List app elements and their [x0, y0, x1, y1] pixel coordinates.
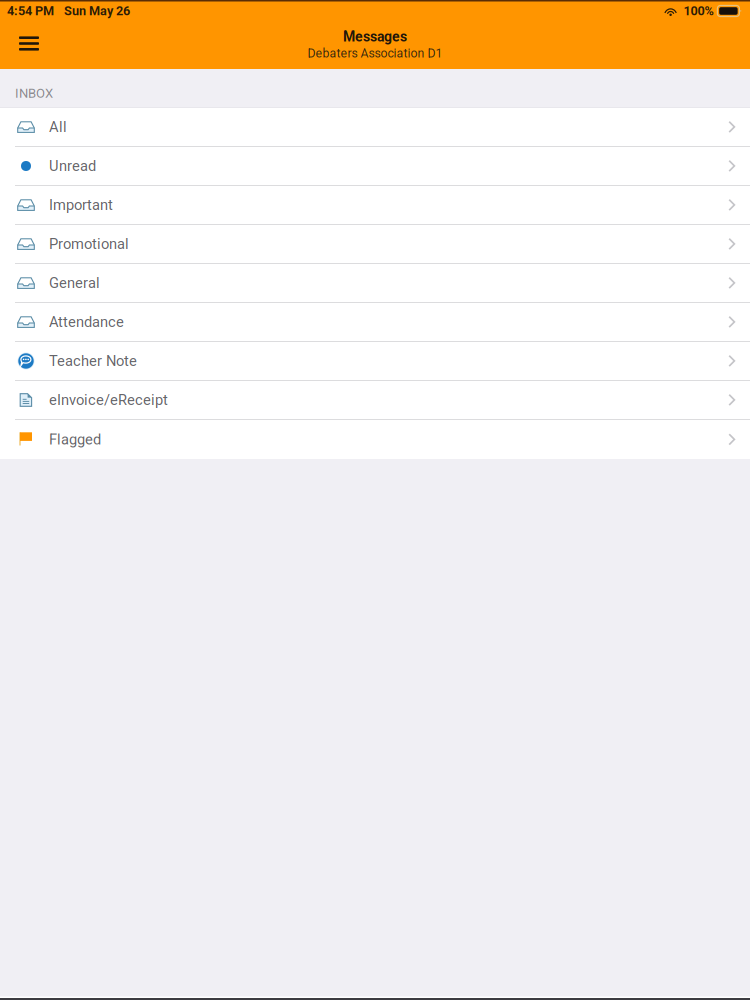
button[interactable]: Flagged: [0, 420, 750, 459]
staticText: Flagged: [49, 431, 101, 448]
staticText: Messages: [343, 29, 407, 45]
button[interactable]: Important: [0, 186, 750, 225]
button[interactable]: eInvoice/eReceipt: [0, 381, 750, 420]
staticText: Important: [49, 196, 113, 214]
staticText: Debaters Association D1: [307, 46, 442, 60]
staticText: All: [49, 118, 67, 136]
staticText: Sun May 26: [64, 4, 130, 18]
staticText: Promotional: [49, 235, 129, 253]
button[interactable]: Menu: [9, 22, 49, 69]
button[interactable]: Teacher Note: [0, 342, 750, 381]
staticText: INBOX: [15, 86, 53, 101]
staticText: Attendance: [49, 313, 124, 331]
button[interactable]: Unread: [0, 147, 750, 186]
button[interactable]: Promotional: [0, 225, 750, 264]
staticText: Teacher Note: [49, 352, 137, 370]
staticText: 100%: [683, 4, 713, 18]
staticText: General: [49, 274, 100, 292]
staticText: eInvoice/eReceipt: [49, 391, 168, 409]
button[interactable]: Attendance: [0, 303, 750, 342]
button[interactable]: All: [0, 108, 750, 147]
button[interactable]: General: [0, 264, 750, 303]
staticText: 4:54 PM: [7, 4, 54, 18]
staticText: Unread: [49, 157, 96, 175]
